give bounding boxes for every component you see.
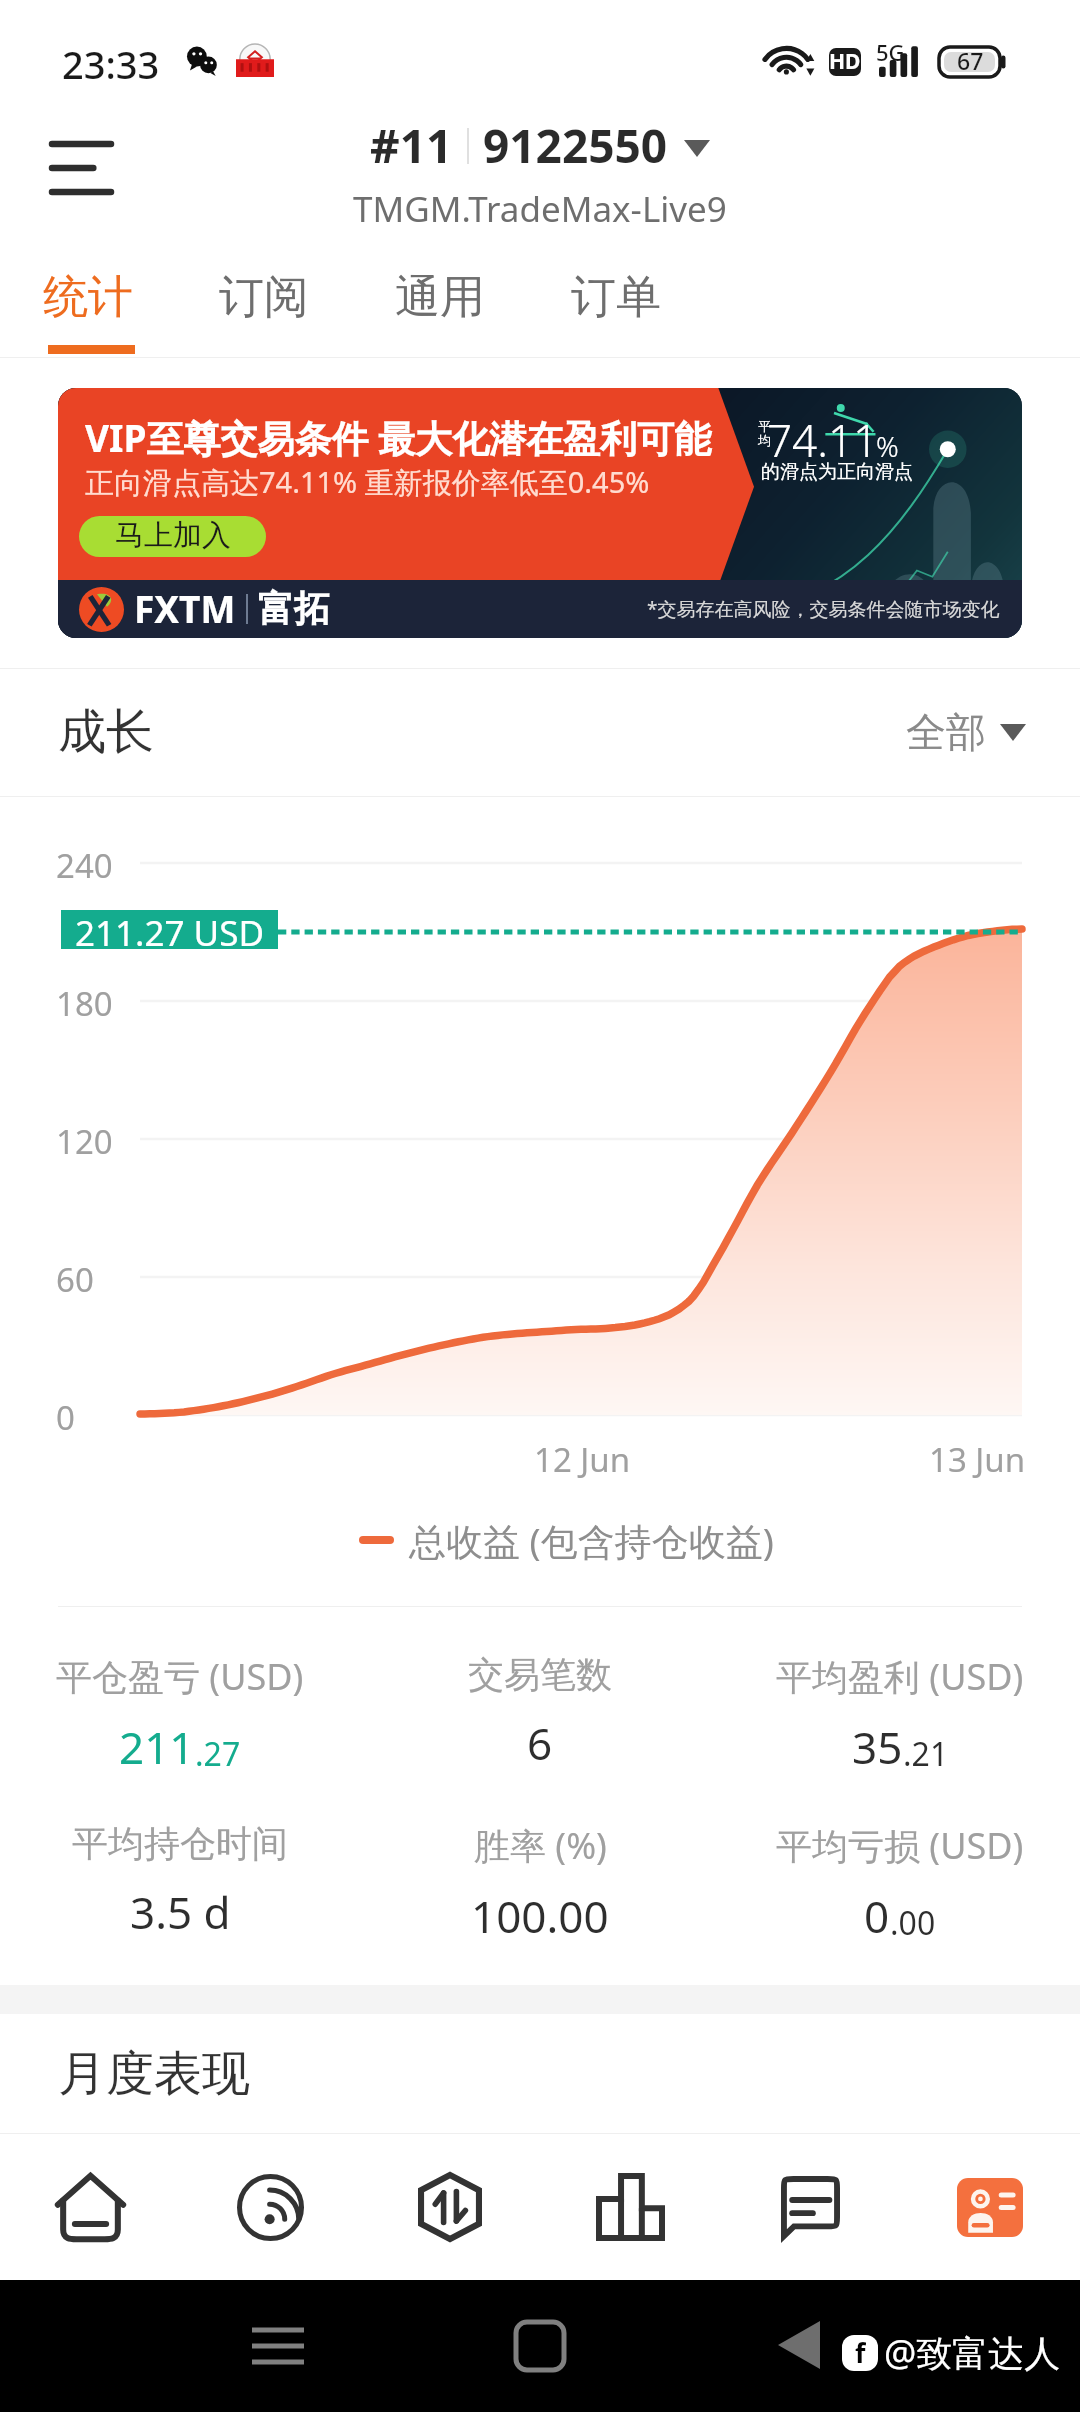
staticText: 富拓 [258, 586, 330, 631]
staticText: 60 [56, 1257, 94, 1302]
staticText: .27 [195, 1732, 241, 1776]
staticText: @致富达人 [884, 2328, 1061, 2377]
button[interactable]: 订阅 [176, 252, 352, 357]
button[interactable]: 全部 [906, 707, 1026, 757]
button[interactable]: Trade [360, 2134, 540, 2280]
button[interactable]: Statistics [540, 2134, 720, 2280]
staticText: 211.27 USD [75, 909, 264, 948]
staticText: HD [829, 48, 861, 75]
staticText: 月度表现 [58, 2044, 250, 2104]
staticText: 马上加入 [115, 517, 231, 554]
staticText: VIP至尊交易条件 最大化潜在盈利可能 [85, 412, 712, 463]
staticText: 0 [56, 1395, 75, 1440]
staticText: 23:33 [62, 38, 160, 90]
staticText: TMGM.TradeMax-Live9 [353, 185, 727, 233]
button[interactable]: 订单 [528, 252, 704, 357]
staticText: #11 [370, 114, 453, 177]
button[interactable]: Messages [720, 2134, 900, 2280]
staticText: 13 Jun [929, 1437, 1026, 1482]
button[interactable]: VIP至尊交易条件 最大化潜在盈利可能 [58, 388, 1022, 638]
staticText: 211 [119, 1717, 195, 1777]
button[interactable]: Menu [4, 109, 159, 227]
staticText: 74.11 [767, 410, 879, 470]
staticText: .00 [890, 1901, 936, 1945]
staticText: 5G [876, 37, 905, 67]
button[interactable]: 统计 [0, 252, 176, 357]
staticText: 胜率 (%) [474, 1821, 607, 1870]
staticText: FXTM [134, 583, 236, 633]
staticText: 全部 [906, 707, 986, 757]
staticText: .21 [903, 1732, 949, 1776]
staticText: 12 Jun [534, 1437, 631, 1482]
staticText: 3.5 d [130, 1882, 231, 1942]
button[interactable]: 通用 [352, 252, 528, 357]
staticText: 订阅 [219, 269, 309, 326]
staticText: f [855, 2335, 866, 2370]
staticText: 平均持仓时间 [72, 1821, 288, 1866]
staticText: 平均亏损 (USD) [776, 1821, 1024, 1870]
staticText: 正向滑点高达74.11% 重新报价率低至0.45% [85, 462, 650, 502]
staticText: *交易存在高风险，交易条件会随市场变化 [647, 596, 1000, 622]
staticText: 9122550 [483, 114, 668, 177]
staticText: 平仓盈亏 (USD) [56, 1652, 304, 1701]
staticText: 订单 [571, 269, 661, 326]
staticText: 成长 [58, 702, 154, 762]
staticText: 180 [56, 981, 113, 1026]
button[interactable]: Home [0, 2134, 180, 2280]
staticText: 平均盈利 (USD) [776, 1652, 1024, 1701]
staticText: 120 [56, 1119, 113, 1164]
staticText: 6 [527, 1713, 553, 1773]
staticText: 67 [957, 45, 984, 76]
button[interactable]: 马上加入 [79, 516, 266, 557]
staticText: 统计 [43, 269, 133, 326]
staticText: 交易笔数 [468, 1652, 612, 1697]
staticText: % [876, 427, 899, 465]
staticText: 100.00 [471, 1886, 609, 1946]
staticText: 0 [864, 1886, 890, 1946]
staticText: 总收益 (包含持仓收益) [409, 1515, 774, 1566]
staticText: 240 [56, 843, 113, 888]
button[interactable]: Profile [900, 2134, 1080, 2280]
staticText: 通用 [395, 269, 485, 326]
button[interactable]: Signals [180, 2134, 360, 2280]
staticText: 平 均 [758, 418, 771, 449]
staticText: 的滑点为正向滑点 [761, 460, 913, 484]
staticText: 35 [852, 1717, 903, 1777]
button[interactable]: #11 [0, 114, 1080, 233]
